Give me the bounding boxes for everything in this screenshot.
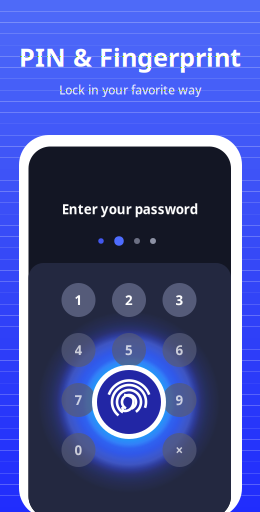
button[interactable]: Scan fingerprint bbox=[92, 365, 166, 439]
staticText: 4 bbox=[74, 341, 82, 359]
staticText: 5 bbox=[125, 341, 133, 359]
staticText: PIN & Fingerprint bbox=[19, 40, 241, 74]
staticText: 3 bbox=[175, 291, 183, 309]
button[interactable]: 7 bbox=[61, 383, 95, 417]
staticText: 8 bbox=[125, 391, 133, 409]
button[interactable]: × bbox=[162, 433, 196, 467]
staticText: 0 bbox=[74, 441, 82, 459]
button[interactable]: 6 bbox=[162, 333, 196, 367]
staticText: 9 bbox=[175, 391, 183, 409]
button[interactable]: 9 bbox=[162, 383, 196, 417]
staticText: Lock in your favorite way bbox=[59, 82, 201, 98]
button[interactable]: 8 bbox=[112, 383, 146, 417]
button[interactable]: 4 bbox=[61, 333, 95, 367]
button[interactable]: 5 bbox=[112, 333, 146, 367]
button[interactable]: 2 bbox=[112, 283, 146, 317]
staticText: 2 bbox=[125, 291, 133, 309]
staticText: 7 bbox=[74, 391, 82, 409]
staticText: × bbox=[175, 441, 183, 459]
staticText: 1 bbox=[74, 291, 82, 309]
button[interactable]: 0 bbox=[61, 433, 95, 467]
button[interactable]: 1 bbox=[61, 283, 95, 317]
staticText: 6 bbox=[175, 341, 183, 359]
button[interactable]: 3 bbox=[162, 283, 196, 317]
staticText: Enter your password bbox=[62, 200, 198, 218]
